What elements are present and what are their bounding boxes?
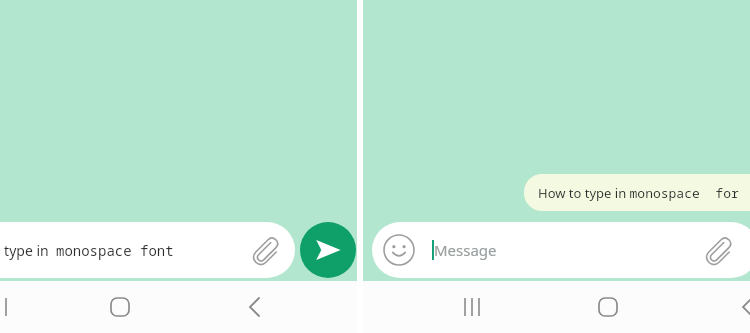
staticText: Message: [434, 240, 497, 260]
button[interactable]: Attach: [700, 233, 734, 267]
staticText: How to type in monospace for: [538, 184, 739, 202]
staticText: o type in monospace font: [0, 241, 174, 260]
button[interactable]: Back: [733, 292, 750, 322]
button[interactable]: Emoji: [382, 233, 416, 267]
button[interactable]: o type in monospace font: [0, 222, 295, 278]
button[interactable]: Back: [240, 292, 270, 322]
button[interactable]: Recent apps: [0, 281, 26, 333]
button[interactable]: Home: [105, 292, 135, 322]
button[interactable]: Recent apps: [456, 292, 486, 322]
button[interactable]: How to type in monospace for: [524, 174, 750, 211]
button[interactable]: Home: [593, 292, 623, 322]
button[interactable]: Attach: [247, 233, 281, 267]
button[interactable]: Emoji: [372, 222, 750, 278]
button[interactable]: Send: [300, 222, 356, 278]
